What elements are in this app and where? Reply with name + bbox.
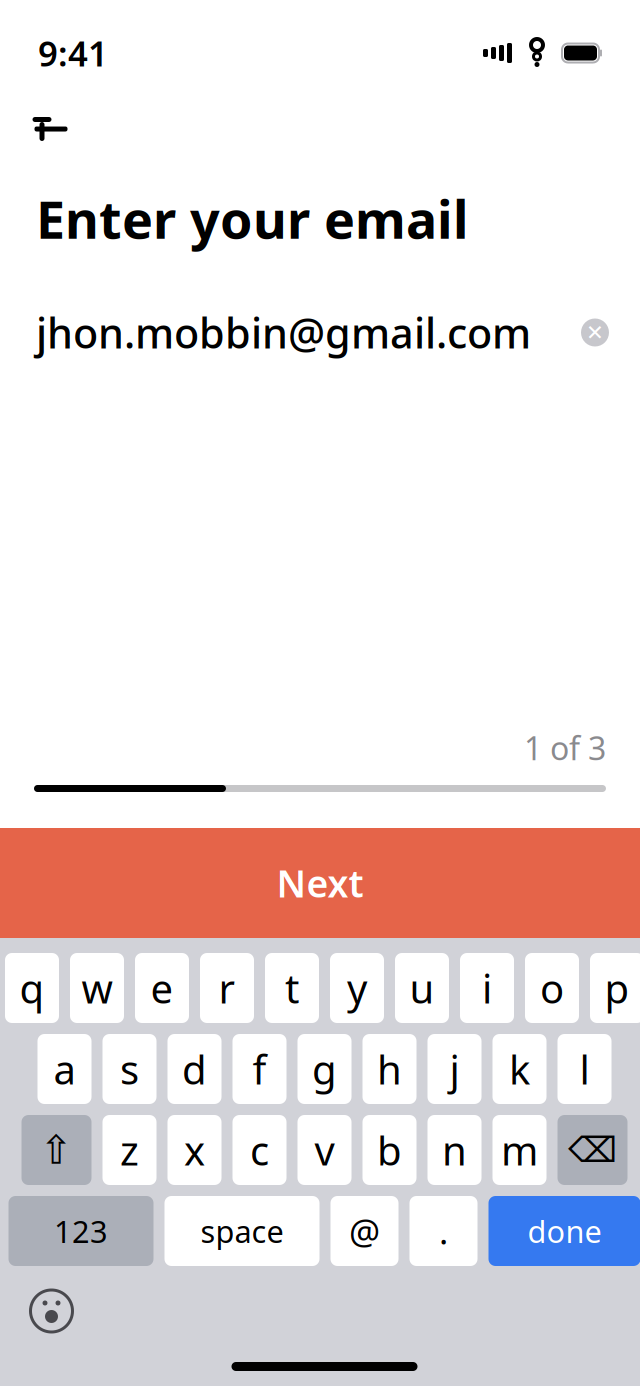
staticText: m xyxy=(501,1123,538,1176)
button[interactable]: @ xyxy=(330,1196,398,1266)
staticText: e xyxy=(150,961,173,1014)
button[interactable]: space xyxy=(164,1196,319,1266)
staticText: v xyxy=(314,1123,334,1176)
staticText: 9:41 xyxy=(38,30,108,76)
button[interactable]: Delete xyxy=(557,1115,627,1185)
button[interactable]: o xyxy=(525,953,579,1023)
staticText: u xyxy=(409,961,434,1014)
staticText: ⌫ xyxy=(568,1130,617,1170)
staticText: 1 of 3 xyxy=(524,726,606,769)
staticText: z xyxy=(120,1123,139,1176)
button[interactable]: h xyxy=(362,1034,416,1104)
staticText: h xyxy=(377,1042,402,1095)
button[interactable]: Shift xyxy=(21,1115,91,1185)
button[interactable]: q xyxy=(5,953,59,1023)
staticText: t xyxy=(285,961,299,1014)
staticText: x xyxy=(184,1123,205,1176)
staticText: a xyxy=(53,1042,75,1095)
button[interactable]: g xyxy=(297,1034,351,1104)
button[interactable]: done xyxy=(488,1196,640,1266)
button[interactable]: i xyxy=(460,953,514,1023)
button[interactable]: Clear text xyxy=(572,309,618,355)
button[interactable]: u xyxy=(395,953,449,1023)
staticText: l xyxy=(579,1042,589,1095)
staticText: jhon.mobbin@gmail.com xyxy=(36,305,531,360)
button[interactable]: c xyxy=(232,1115,286,1185)
staticText: q xyxy=(19,961,44,1014)
staticText: w xyxy=(81,961,112,1014)
button[interactable]: v xyxy=(297,1115,351,1185)
staticText: y xyxy=(347,961,367,1014)
staticText: Enter your email xyxy=(36,184,468,253)
staticText: k xyxy=(509,1042,530,1095)
button[interactable]: e xyxy=(135,953,189,1023)
button[interactable]: Next xyxy=(0,828,640,938)
button[interactable]: f xyxy=(232,1034,286,1104)
staticText: i xyxy=(482,961,492,1014)
button[interactable]: s xyxy=(102,1034,156,1104)
staticText: p xyxy=(604,961,629,1014)
staticText: f xyxy=(252,1042,266,1095)
button[interactable]: m xyxy=(492,1115,546,1185)
staticText: j xyxy=(449,1042,459,1095)
staticText: @ xyxy=(349,1208,380,1254)
button[interactable]: l xyxy=(557,1034,611,1104)
staticText: . xyxy=(439,1208,448,1254)
button[interactable]: a xyxy=(37,1034,91,1104)
staticText: done xyxy=(527,1211,601,1251)
staticText: 123 xyxy=(54,1211,108,1251)
staticText: o xyxy=(540,961,564,1014)
staticText: d xyxy=(182,1042,207,1095)
staticText: c xyxy=(250,1123,269,1176)
button[interactable]: z xyxy=(102,1115,156,1185)
staticText: space xyxy=(200,1211,283,1251)
button[interactable]: j xyxy=(427,1034,481,1104)
button[interactable]: Emoji keyboard xyxy=(22,1282,80,1340)
staticText: ⇧ xyxy=(39,1127,73,1173)
button[interactable]: r xyxy=(200,953,254,1023)
button[interactable]: x xyxy=(167,1115,221,1185)
button[interactable]: w xyxy=(70,953,124,1023)
staticText: n xyxy=(442,1123,467,1176)
button[interactable]: n xyxy=(427,1115,481,1185)
button[interactable]: . xyxy=(409,1196,477,1266)
button[interactable]: t xyxy=(265,953,319,1023)
staticText: Next xyxy=(276,858,363,908)
button[interactable]: y xyxy=(330,953,384,1023)
staticText: g xyxy=(312,1042,337,1095)
staticText: ✕ xyxy=(586,320,604,345)
button[interactable]: d xyxy=(167,1034,221,1104)
button[interactable]: b xyxy=(362,1115,416,1185)
button[interactable]: p xyxy=(590,953,640,1023)
button[interactable]: 123 xyxy=(8,1196,153,1266)
staticText: s xyxy=(120,1042,139,1095)
button[interactable]: k xyxy=(492,1034,546,1104)
button[interactable]: Back xyxy=(24,104,78,154)
staticText: b xyxy=(377,1123,402,1176)
staticText: r xyxy=(218,961,235,1014)
